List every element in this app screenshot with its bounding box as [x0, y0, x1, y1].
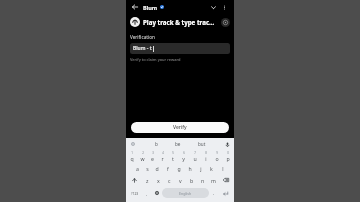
staticText: n — [201, 177, 205, 184]
staticText: 6 — [183, 151, 185, 155]
button[interactable]: Back — [130, 2, 140, 12]
staticText: 2 — [142, 151, 144, 155]
staticText: s — [146, 165, 149, 172]
button[interactable]: m — [208, 174, 219, 186]
button[interactable]: d — [152, 162, 162, 174]
staticText: i — [205, 155, 207, 162]
staticText: 5 — [172, 151, 174, 155]
button[interactable]: n — [197, 174, 208, 186]
staticText: z — [146, 177, 149, 184]
staticText: h — [188, 165, 192, 172]
button[interactable]: Shift — [127, 174, 142, 186]
staticText: c — [168, 177, 171, 184]
staticText: j — [200, 165, 202, 172]
staticText: 4 — [162, 151, 164, 155]
button[interactable]: 1 — [127, 150, 137, 162]
staticText: o — [215, 155, 219, 162]
staticText: 9 — [216, 151, 218, 155]
staticText: g — [177, 165, 181, 172]
staticText: d — [155, 165, 159, 172]
staticText: 1 — [131, 151, 133, 155]
button[interactable]: 3 — [147, 150, 157, 162]
button[interactable]: Info — [221, 18, 230, 27]
staticText: q — [130, 155, 134, 162]
staticText: English — [179, 191, 192, 196]
button[interactable]: 2 — [137, 150, 147, 162]
button[interactable]: z — [142, 174, 153, 186]
staticText: m — [211, 177, 216, 184]
button[interactable]: 4 — [157, 150, 167, 162]
button[interactable]: English — [162, 188, 209, 198]
staticText: 0 — [227, 151, 229, 155]
button[interactable]: Voice input — [223, 140, 231, 148]
button[interactable]: c — [164, 174, 175, 186]
staticText: Blum - t — [133, 45, 152, 52]
staticText: e — [151, 155, 154, 162]
staticText: t — [172, 155, 174, 162]
staticText: a — [136, 165, 139, 172]
staticText: but — [198, 141, 206, 147]
button[interactable]: a — [132, 162, 142, 174]
button[interactable]: Verify — [131, 122, 229, 133]
staticText: w — [140, 155, 145, 162]
button[interactable]: b — [186, 174, 197, 186]
button[interactable]: More options — [219, 2, 230, 13]
staticText: u — [193, 155, 197, 162]
staticText: , — [146, 191, 148, 196]
button[interactable]: Backspace — [219, 174, 233, 186]
staticText: Verify to claim your reward — [130, 57, 181, 62]
button[interactable]: . — [209, 188, 219, 198]
button[interactable]: 8 — [200, 150, 211, 162]
button[interactable]: Enter — [219, 188, 232, 198]
staticText: l — [222, 165, 224, 172]
staticText: x — [157, 177, 160, 184]
staticText: v — [179, 177, 182, 184]
staticText: 7 — [194, 151, 196, 155]
staticText: b — [190, 177, 194, 184]
button[interactable]: f — [162, 162, 173, 174]
staticText: Verification — [130, 34, 155, 40]
button[interactable]: Emoji — [142, 188, 152, 198]
button[interactable]: 6 — [178, 150, 189, 162]
button[interactable]: ?123 — [128, 188, 142, 198]
staticText: k — [210, 165, 213, 172]
staticText: b — [155, 141, 158, 147]
button[interactable]: Expand — [208, 2, 219, 13]
button[interactable]: Blum - t — [130, 43, 230, 54]
button[interactable]: s — [142, 162, 152, 174]
button[interactable]: j — [195, 162, 206, 174]
staticText: 8 — [205, 151, 207, 155]
button[interactable]: 5 — [167, 150, 178, 162]
staticText: y — [182, 155, 185, 162]
staticText: Blum — [143, 4, 158, 11]
button[interactable]: 7 — [189, 150, 200, 162]
button[interactable]: k — [206, 162, 217, 174]
staticText: p — [226, 155, 230, 162]
button[interactable]: h — [184, 162, 195, 174]
staticText: Verify — [173, 124, 187, 131]
staticText: be — [175, 141, 181, 147]
button[interactable]: Settings — [129, 140, 137, 148]
staticText: f — [167, 165, 169, 172]
button[interactable]: v — [175, 174, 186, 186]
button[interactable]: 9 — [211, 150, 222, 162]
staticText: 3 — [152, 151, 154, 155]
staticText: . — [213, 190, 215, 196]
button[interactable]: x — [153, 174, 164, 186]
button[interactable]: 0 — [222, 150, 233, 162]
button[interactable]: g — [173, 162, 184, 174]
button[interactable]: l — [217, 162, 228, 174]
staticText: Play track & type trac... — [143, 18, 219, 26]
button[interactable]: Language — [152, 188, 162, 198]
staticText: r — [161, 155, 164, 162]
staticText: ?123 — [131, 191, 139, 196]
